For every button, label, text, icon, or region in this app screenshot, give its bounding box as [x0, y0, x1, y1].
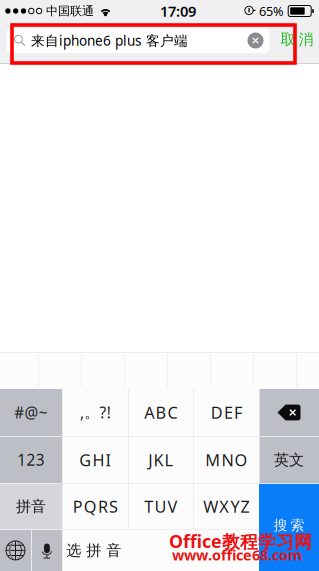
button[interactable]: J [129, 437, 193, 483]
staticText: Office教程学习网 [169, 529, 312, 553]
staticText: 消 [298, 30, 313, 49]
staticText: D [211, 401, 223, 424]
staticText: R [98, 495, 108, 517]
staticText: C [167, 401, 177, 424]
staticText: G [79, 449, 91, 471]
staticText: 文 [289, 450, 304, 469]
staticText: 索 [290, 517, 304, 534]
button[interactable]: D [194, 389, 259, 436]
button[interactable]: 选 [63, 530, 259, 571]
staticText: P [73, 495, 83, 517]
button[interactable]: Delete [259, 389, 319, 436]
staticText: J [148, 449, 152, 471]
staticText: V [167, 495, 177, 517]
staticText: E [224, 401, 233, 424]
staticText: 搜 [273, 517, 287, 534]
staticText: M [205, 449, 220, 471]
staticText: H [92, 449, 104, 471]
staticText: 取 [280, 30, 295, 49]
button[interactable]: 英 [259, 437, 319, 483]
button[interactable]: W [194, 484, 259, 529]
staticText: T [144, 495, 153, 517]
button[interactable]: 来自iphone6 plus 客户端 [6, 28, 269, 53]
staticText: 拼 [16, 497, 31, 516]
staticText: , [80, 402, 84, 423]
staticText: 选 [66, 541, 81, 560]
button[interactable]: M [194, 437, 259, 483]
button[interactable]: # [0, 389, 62, 436]
staticText: 英 [274, 450, 289, 469]
staticText: U [154, 495, 166, 517]
button[interactable]: 搜 [259, 484, 319, 571]
button[interactable]: T [129, 484, 193, 529]
staticText: Q [84, 495, 97, 517]
button[interactable]: 拼 [0, 484, 62, 529]
button[interactable]: G [63, 437, 128, 483]
button[interactable]: 1 [0, 437, 62, 483]
button[interactable]: 取 [277, 27, 317, 52]
staticText: ~ [39, 402, 48, 423]
button[interactable]: Switch keyboard [0, 530, 31, 571]
staticText: # [14, 402, 24, 423]
staticText: 音 [106, 541, 121, 560]
staticText: ? [99, 402, 106, 423]
staticText: X [219, 495, 229, 517]
staticText: F [234, 401, 242, 424]
staticText: www.office68.com [172, 545, 302, 565]
staticText: 17:09 [160, 1, 196, 21]
button[interactable]: A [129, 389, 193, 436]
staticText: W [203, 495, 218, 517]
staticText: B [155, 401, 166, 424]
staticText: ! [107, 402, 111, 423]
staticText: A [144, 401, 154, 424]
staticText: I [105, 449, 111, 471]
staticText: N [221, 449, 233, 471]
staticText: Y [230, 495, 239, 517]
staticText: 1 [17, 449, 26, 470]
button[interactable]: Dictate [32, 530, 62, 571]
staticText: Z [241, 495, 250, 517]
staticText: S [109, 495, 118, 517]
staticText: L [164, 449, 173, 471]
button[interactable]: P [63, 484, 128, 529]
staticText: 来自iphone6 plus 客户端 [31, 31, 188, 50]
staticText: 音 [31, 497, 46, 516]
staticText: 65% [259, 2, 284, 20]
staticText: 2 [26, 449, 35, 470]
staticText: 拼 [86, 541, 101, 560]
staticText: 。 [84, 403, 99, 422]
staticText: O [234, 449, 247, 471]
button[interactable]: , [63, 389, 128, 436]
staticText: K [153, 449, 163, 471]
staticText: @ [24, 402, 38, 423]
staticText: 中国联通 [46, 3, 94, 18]
staticText: 3 [36, 449, 45, 470]
